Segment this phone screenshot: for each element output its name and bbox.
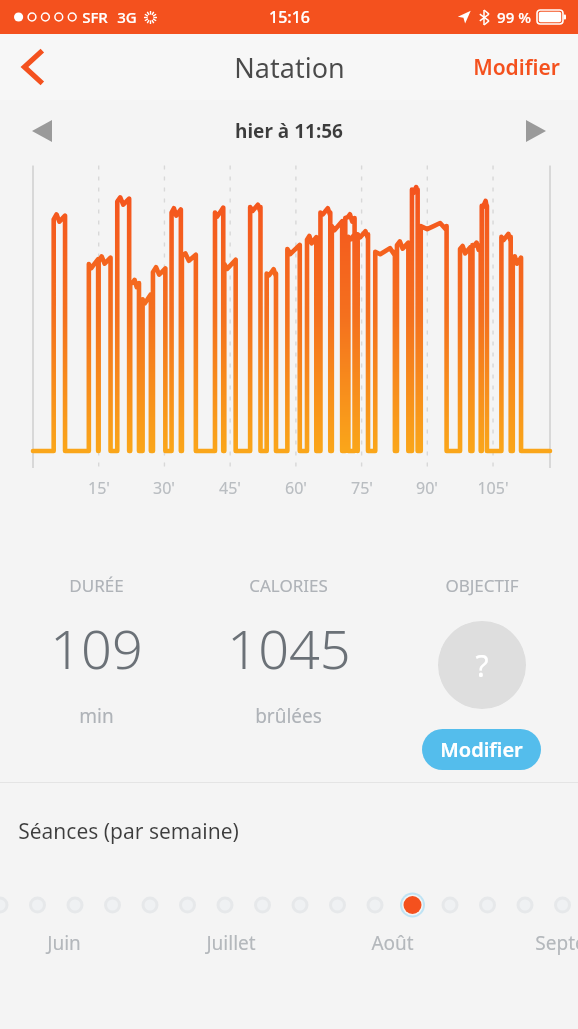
staticText: CALORIES <box>249 574 328 597</box>
staticText: 105' <box>477 477 509 499</box>
staticText: Septe <box>535 930 578 956</box>
staticText: 90' <box>416 477 438 499</box>
staticText: hier à 11:56 <box>235 118 343 144</box>
staticText: Juin <box>47 930 81 956</box>
staticText: SFR <box>82 7 108 27</box>
staticText: min <box>79 703 114 729</box>
staticText: 15' <box>88 477 110 499</box>
staticText: 15:16 <box>269 6 310 28</box>
staticText: DURÉE <box>69 574 124 597</box>
staticText: ? <box>475 645 489 686</box>
staticText: Modifier <box>440 736 523 763</box>
staticText: Août <box>371 930 414 956</box>
button[interactable]: Objectif non défini <box>438 621 526 709</box>
staticText: brûlées <box>255 703 322 729</box>
staticText: Modifier <box>473 53 560 82</box>
button[interactable]: Modifier <box>422 729 541 770</box>
staticText: Séances (par semaine) <box>18 817 239 846</box>
staticText: OBJECTIF <box>445 574 519 597</box>
staticText: 1045 <box>227 611 351 685</box>
staticText: 75' <box>351 477 373 499</box>
staticText: 99 % <box>497 7 531 27</box>
button[interactable]: Précédent <box>20 109 64 153</box>
button[interactable]: Retour <box>6 41 58 93</box>
button[interactable]: Modifier <box>463 45 570 90</box>
staticText: 3G <box>117 7 137 27</box>
staticText: Natation <box>234 49 345 86</box>
staticText: 109 <box>50 611 143 685</box>
staticText: 45' <box>219 477 241 499</box>
staticText: Juillet <box>206 930 256 956</box>
staticText: 60' <box>285 477 307 499</box>
button[interactable]: Suivant <box>514 109 558 153</box>
staticText: 30' <box>153 477 175 499</box>
